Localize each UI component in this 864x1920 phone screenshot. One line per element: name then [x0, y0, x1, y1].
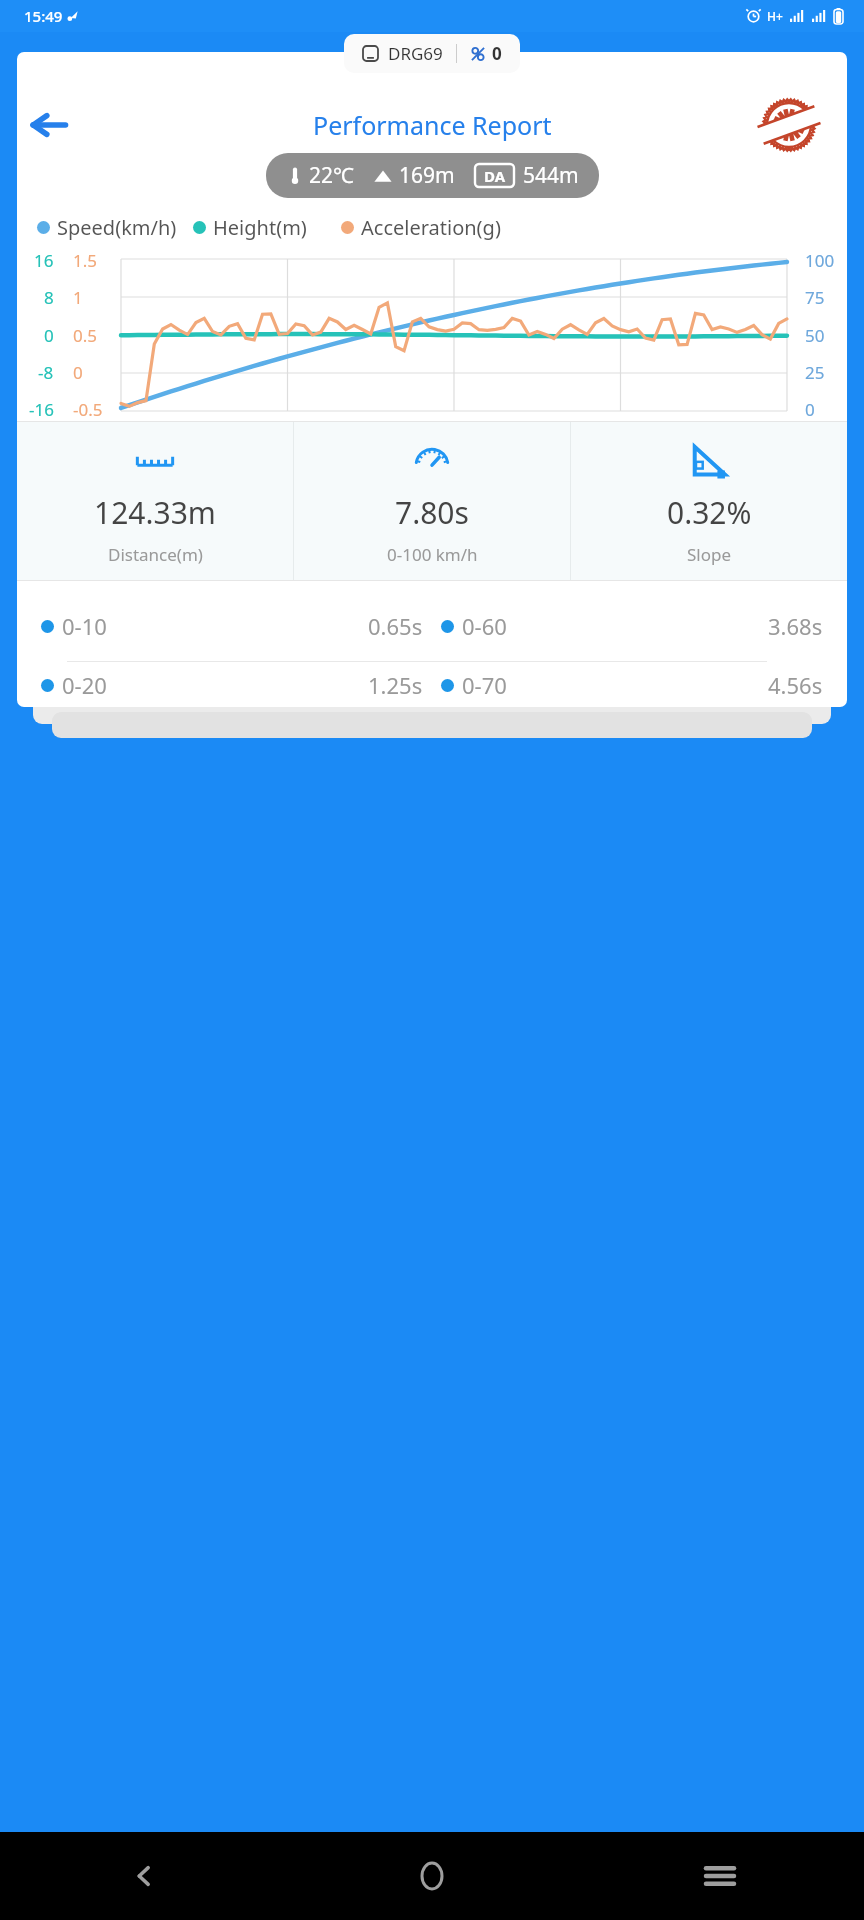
button[interactable]: 0-20 [17, 662, 847, 707]
staticText: Slope [687, 543, 732, 566]
staticText: 50 [805, 324, 825, 347]
staticText: 0 [805, 398, 815, 421]
staticText: 0-60 [462, 611, 507, 641]
staticText: 0 [492, 42, 502, 65]
button[interactable]: Back [0, 1832, 288, 1920]
button[interactable]: Recents [576, 1832, 864, 1920]
staticText: 1.25s [368, 670, 423, 700]
button[interactable]: 124.33m [17, 422, 293, 580]
staticText: -8 [38, 361, 54, 384]
staticText: Acceleration(g) [361, 214, 501, 241]
staticText: 0-100 km/h [387, 543, 478, 566]
button[interactable]: Back [31, 107, 67, 143]
staticText: 0-20 [62, 670, 107, 700]
staticText: 0-10 [62, 611, 107, 641]
button[interactable]: 0-10 [17, 591, 847, 661]
staticText: 15:49 [24, 6, 63, 26]
button[interactable]: Home [288, 1832, 576, 1920]
staticText: H+ [767, 8, 783, 24]
staticText: 25 [805, 361, 825, 384]
staticText: 8 [44, 286, 54, 309]
staticText: 4.56s [768, 670, 823, 700]
staticText: 544m [523, 161, 579, 190]
staticText: 169m [399, 161, 455, 190]
staticText: 22℃ [309, 161, 354, 190]
staticText: 16 [34, 249, 54, 272]
button[interactable]: 7.80s [294, 422, 570, 580]
staticText: 124.33m [94, 492, 216, 533]
button[interactable]: 22℃ [266, 153, 599, 198]
staticText: -16 [29, 398, 54, 421]
staticText: 3.68s [768, 611, 823, 641]
staticText: -0.5 [73, 398, 103, 421]
staticText: 1.5 [73, 249, 98, 272]
staticText: 7.80s [395, 492, 469, 533]
staticText: 0 [44, 324, 54, 347]
button[interactable]: 0.32% [571, 422, 847, 580]
staticText: 100 [805, 249, 835, 272]
staticText: DRG69 [388, 42, 443, 65]
staticText: Performance Report [313, 108, 552, 142]
staticText: Height(m) [213, 214, 307, 241]
button[interactable]: DRG69 [344, 34, 520, 73]
staticText: DA [484, 166, 506, 186]
staticText: Speed(km/h) [57, 214, 177, 241]
staticText: 0.5 [73, 324, 98, 347]
staticText: 0.32% [667, 492, 752, 533]
staticText: 0-70 [462, 670, 507, 700]
staticText: 1 [73, 286, 83, 309]
staticText: 0 [73, 361, 83, 384]
staticText: 75 [805, 286, 825, 309]
staticText: Distance(m) [108, 543, 203, 566]
staticText: 0.65s [368, 611, 423, 641]
